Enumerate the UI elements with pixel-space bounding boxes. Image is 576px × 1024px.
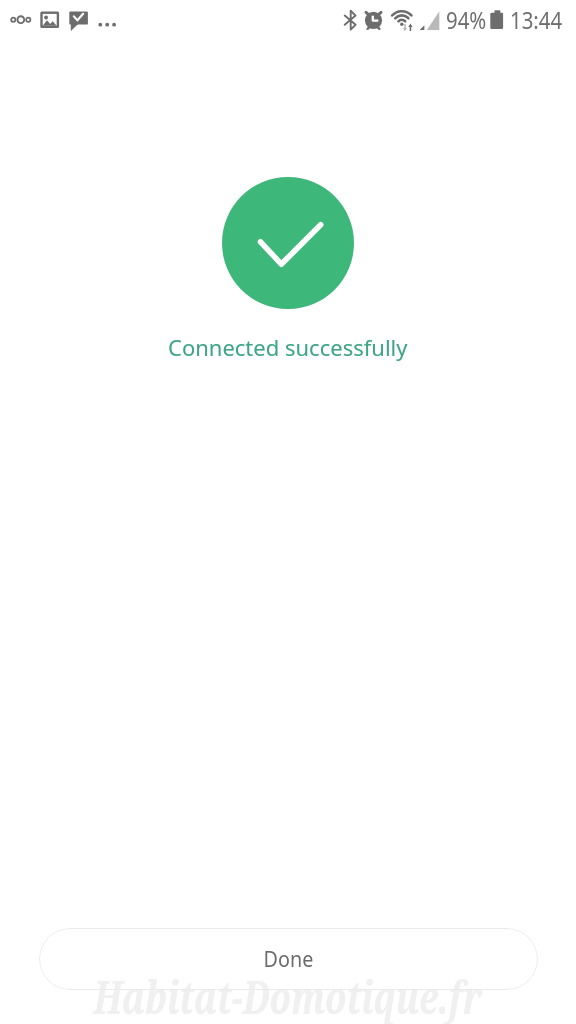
staticText: Habitat-Domotique.fr bbox=[93, 965, 482, 1024]
staticText: 13:44 bbox=[510, 3, 563, 36]
staticText: Done bbox=[264, 945, 313, 974]
staticText: Connected successfully bbox=[168, 332, 408, 362]
staticText: 94% bbox=[446, 3, 487, 36]
button[interactable]: Done bbox=[39, 928, 538, 990]
other: Success bbox=[222, 177, 354, 309]
